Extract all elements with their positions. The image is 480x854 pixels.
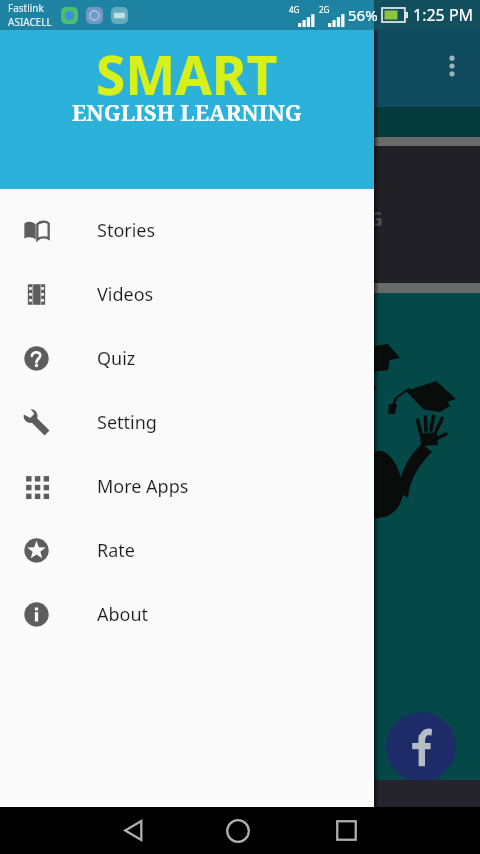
staticText: 1:25 PM (413, 4, 474, 26)
staticText: G (369, 206, 383, 232)
button[interactable]: Back (109, 807, 157, 854)
staticText: 2G (319, 4, 330, 15)
staticText: Stories (97, 218, 156, 243)
staticText: Videos (97, 282, 154, 307)
button[interactable]: Quiz (0, 326, 374, 390)
staticText: Setting (97, 410, 157, 435)
staticText: 56% (348, 5, 378, 25)
staticText: Quiz (97, 346, 136, 371)
staticText: ASIACELL (8, 15, 52, 29)
button[interactable]: About (0, 582, 374, 646)
staticText: Fastlink (8, 1, 44, 15)
staticText: SMART (96, 38, 278, 110)
staticText: More Apps (97, 474, 189, 499)
button[interactable]: Home (214, 807, 262, 854)
button[interactable]: More options (437, 51, 467, 81)
staticText: About (97, 602, 149, 627)
button[interactable]: Rate (0, 518, 374, 582)
staticText: ENGLISH LEARNING (72, 97, 302, 127)
staticText: 4G (289, 4, 300, 15)
button[interactable]: Facebook (386, 712, 456, 782)
button[interactable]: Setting (0, 390, 374, 454)
button[interactable]: Stories (0, 198, 374, 262)
button[interactable]: Recents (322, 807, 370, 854)
button[interactable]: More Apps (0, 454, 374, 518)
staticText: Rate (97, 538, 135, 563)
button[interactable]: Videos (0, 262, 374, 326)
